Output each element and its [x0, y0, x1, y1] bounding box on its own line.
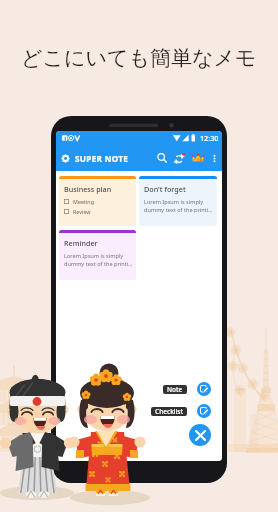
staticText: Checklist: [155, 407, 183, 416]
button[interactable]: Business plan: [59, 176, 136, 226]
staticText: Lorem Ipsum is simply dummy text of the …: [144, 198, 213, 214]
staticText: Lorem Ipsum is simply dummy text of the …: [64, 252, 133, 268]
staticText: Note: [167, 385, 183, 394]
staticText: Business plan: [64, 184, 112, 194]
staticText: SUPER NOTE: [75, 153, 129, 164]
button[interactable]: Checklist: [151, 407, 187, 416]
button[interactable]: VIP: [190, 150, 206, 166]
button[interactable]: Checklist: [197, 404, 211, 418]
staticText: Review: [73, 208, 91, 215]
staticText: Don't forget: [144, 184, 186, 194]
button[interactable]: Note: [197, 382, 211, 396]
staticText: 12:30: [200, 133, 219, 143]
button[interactable]: Note: [163, 385, 187, 394]
button[interactable]: Sync: [171, 150, 187, 166]
button[interactable]: Settings: [57, 150, 73, 166]
staticText: どこにいても簡単なメモ: [21, 45, 257, 71]
staticText: Reminder: [64, 238, 98, 248]
button[interactable]: More options: [208, 152, 220, 164]
button[interactable]: Close: [189, 424, 211, 446]
staticText: Meeting: [73, 198, 94, 205]
button[interactable]: Don't forget: [139, 176, 217, 226]
button[interactable]: Search: [154, 150, 170, 166]
button[interactable]: Reminder: [59, 230, 136, 280]
